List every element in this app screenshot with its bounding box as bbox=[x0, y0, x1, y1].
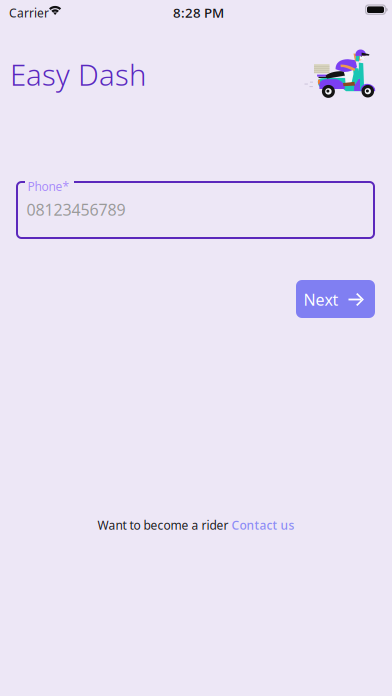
staticText: Next bbox=[303, 289, 338, 310]
staticText: Phone* bbox=[27, 178, 69, 194]
staticText: Carrier bbox=[9, 5, 49, 21]
staticText: Easy Dash bbox=[10, 55, 146, 94]
staticText: 8:28 PM bbox=[173, 4, 224, 21]
staticText: Contact us bbox=[231, 517, 294, 533]
staticText: Want to become a rider bbox=[97, 517, 231, 533]
staticText: 08123456789 bbox=[26, 199, 125, 220]
button[interactable]: Next bbox=[296, 280, 375, 318]
button[interactable]: Contact us bbox=[231, 515, 294, 535]
